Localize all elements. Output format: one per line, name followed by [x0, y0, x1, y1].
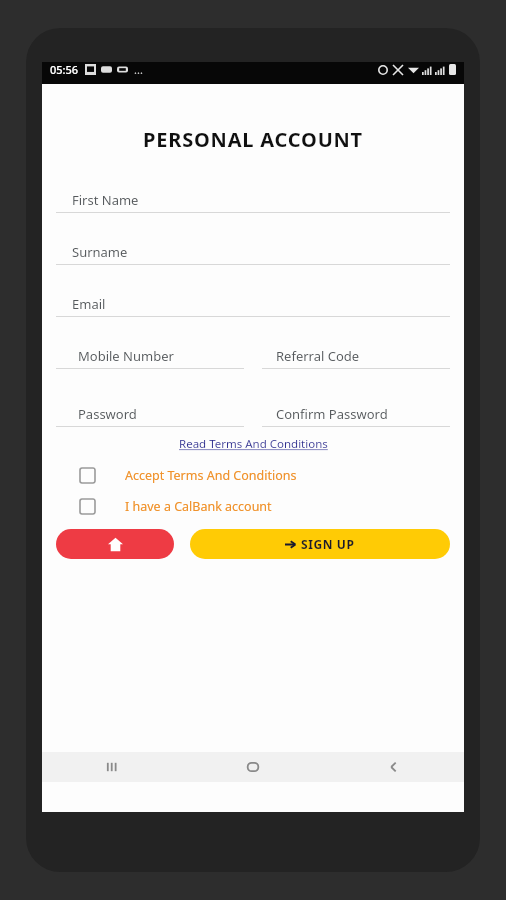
staticText: Referral Code [276, 347, 360, 365]
button[interactable]: First Name [56, 184, 450, 213]
staticText: Password [78, 405, 137, 423]
staticText: Surname [72, 243, 128, 261]
button[interactable]: SIGN UP [190, 529, 450, 559]
button[interactable]: Confirm Password [262, 398, 450, 427]
button[interactable]: Back [323, 752, 464, 782]
staticText: Email [72, 295, 106, 313]
staticText: First Name [72, 191, 139, 209]
button[interactable]: Mobile Number [56, 340, 244, 369]
button[interactable]: Home [182, 752, 323, 782]
button[interactable]: Accept Terms And Conditions [56, 467, 450, 484]
staticText: Confirm Password [276, 405, 388, 423]
button[interactable]: Email [56, 288, 450, 317]
button[interactable]: Password [56, 398, 244, 427]
button[interactable]: I have a CalBank account [56, 498, 450, 515]
staticText: PERSONAL ACCOUNT [56, 126, 450, 153]
button[interactable]: Recent apps [42, 752, 182, 782]
button[interactable]: Surname [56, 236, 450, 265]
staticText: SIGN UP [301, 536, 355, 552]
staticText: ... [134, 62, 143, 77]
staticText: Mobile Number [78, 347, 174, 365]
button[interactable]: Home [56, 529, 174, 559]
staticText: I have a CalBank account [125, 498, 272, 515]
button[interactable]: Read Terms And Conditions [179, 436, 328, 452]
staticText: 05:56 [50, 62, 79, 77]
staticText: Accept Terms And Conditions [125, 467, 297, 484]
button[interactable]: Referral Code [262, 340, 450, 369]
